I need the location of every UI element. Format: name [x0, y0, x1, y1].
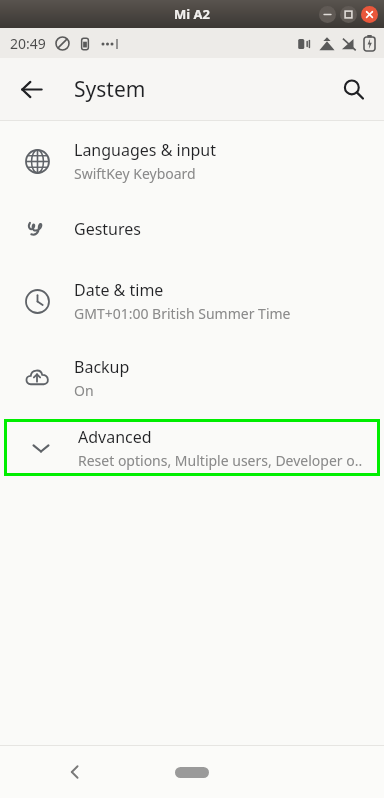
staticText: System	[74, 75, 146, 104]
staticText: Backup	[74, 356, 130, 378]
staticText: 20:49	[10, 34, 46, 53]
button[interactable]: Search	[330, 66, 376, 112]
staticText: GMT+01:00 British Summer Time	[74, 304, 291, 323]
button[interactable]: Back	[8, 66, 54, 112]
button[interactable]: Date & time	[0, 262, 384, 340]
staticText: Advanced	[78, 426, 152, 448]
staticText: Languages & input	[74, 139, 217, 161]
button[interactable]: Gestures	[0, 196, 384, 262]
button[interactable]: Languages & input	[0, 125, 384, 196]
button[interactable]: Window button	[340, 6, 357, 23]
staticText: On	[74, 381, 94, 400]
button[interactable]: Advanced	[4, 419, 380, 476]
staticText: Gestures	[74, 218, 141, 240]
button[interactable]: Backup	[0, 340, 384, 415]
button[interactable]: Back	[54, 751, 96, 793]
button[interactable]: Window button	[319, 6, 336, 23]
button[interactable]: Home	[175, 767, 209, 778]
button[interactable]: Window button	[361, 6, 378, 23]
staticText: Mi A2	[174, 5, 210, 23]
staticText: SwiftKey Keyboard	[74, 164, 196, 183]
staticText: Reset options, Multiple users, Developer…	[78, 451, 363, 470]
staticText: Date & time	[74, 279, 164, 301]
